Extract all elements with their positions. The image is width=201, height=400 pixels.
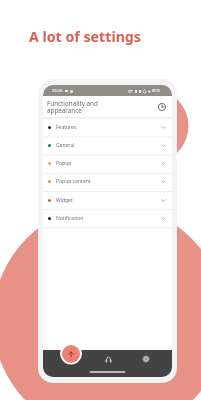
button[interactable]: Popup (43, 155, 172, 172)
button[interactable]: Popup content (43, 173, 172, 190)
button[interactable]: History (156, 101, 168, 113)
staticText: Features (56, 124, 77, 131)
button[interactable]: Notification (43, 210, 172, 227)
button[interactable]: Audio (102, 353, 114, 365)
staticText: Popup content (56, 178, 91, 185)
button[interactable]: Settings (140, 353, 152, 365)
staticText: General (56, 142, 75, 149)
button[interactable]: Widget (43, 192, 172, 209)
staticText: Widget (56, 197, 73, 204)
staticText: A lot of settings (29, 27, 141, 46)
staticText: 85% (152, 88, 161, 94)
button[interactable]: General (43, 137, 172, 154)
button[interactable]: Scroll to top (62, 345, 80, 363)
staticText: Popup (56, 160, 72, 167)
staticText: Functionality and appearance (47, 99, 98, 115)
staticText: Notification (56, 215, 84, 222)
staticText: 23:26 (52, 88, 63, 94)
button[interactable]: Features (43, 119, 172, 136)
